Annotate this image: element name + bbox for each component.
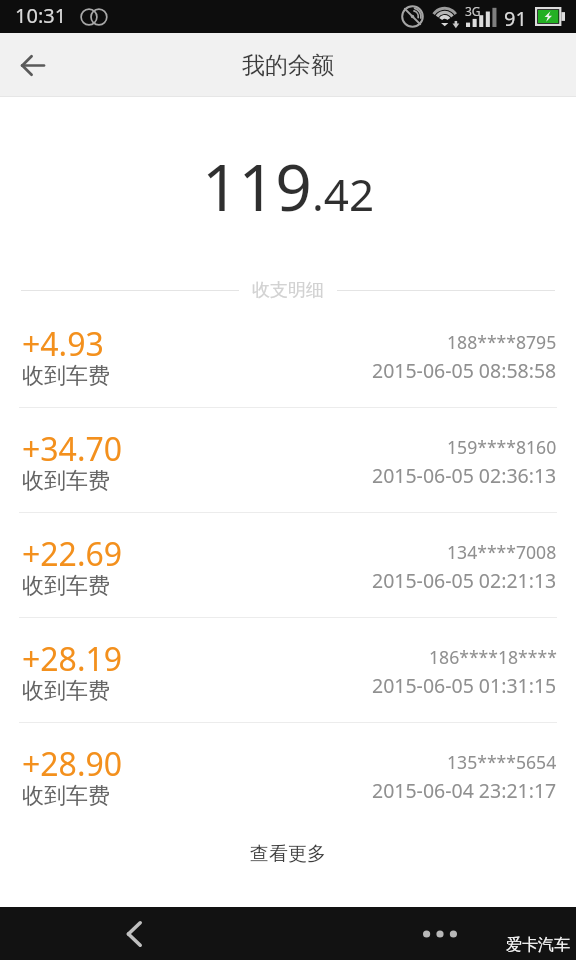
staticText: +4.93 — [22, 322, 104, 366]
staticText: 2015-06-04 23:21:17 — [372, 777, 557, 804]
staticText: 2015-06-05 08:58:58 — [372, 357, 557, 384]
staticText: 3G — [465, 3, 481, 19]
staticText: 收支明细 — [252, 279, 324, 301]
button[interactable]: +22.69 — [0, 513, 576, 617]
staticText: +28.90 — [22, 742, 123, 786]
button[interactable]: +4.93 — [0, 303, 576, 407]
staticText: 收到车费 — [22, 782, 110, 810]
staticText: 爱卡汽车 — [506, 935, 570, 955]
staticText: 收到车费 — [22, 572, 110, 600]
button[interactable]: +28.90 — [0, 723, 576, 827]
staticText: 135****5654 — [447, 750, 557, 774]
staticText: 2015-06-05 01:31:15 — [372, 672, 557, 699]
staticText: 91 — [504, 5, 527, 32]
button[interactable]: Back — [8, 41, 56, 89]
staticText: 186****18**** — [429, 645, 557, 669]
staticText: .42 — [312, 164, 375, 224]
staticText: 188****8795 — [447, 330, 557, 354]
staticText: 收到车费 — [22, 362, 110, 390]
staticText: 查看更多 — [250, 842, 326, 866]
staticText: 收到车费 — [22, 677, 110, 705]
button[interactable]: +34.70 — [0, 408, 576, 512]
button[interactable]: Back — [108, 908, 160, 960]
staticText: 10:31 — [15, 2, 67, 29]
button[interactable]: Menu — [414, 908, 466, 960]
button[interactable]: +28.19 — [0, 618, 576, 722]
staticText: 119 — [202, 143, 312, 230]
staticText: 2015-06-05 02:21:13 — [372, 567, 557, 594]
staticText: 159****8160 — [447, 435, 557, 459]
staticText: 2015-06-05 02:36:13 — [372, 462, 557, 489]
staticText: 134****7008 — [447, 540, 557, 564]
staticText: 我的余额 — [242, 51, 334, 80]
button[interactable]: 查看更多 — [0, 834, 576, 874]
staticText: +34.70 — [22, 427, 123, 471]
staticText: 收到车费 — [22, 467, 110, 495]
staticText: +22.69 — [22, 532, 123, 576]
staticText: +28.19 — [22, 637, 123, 681]
